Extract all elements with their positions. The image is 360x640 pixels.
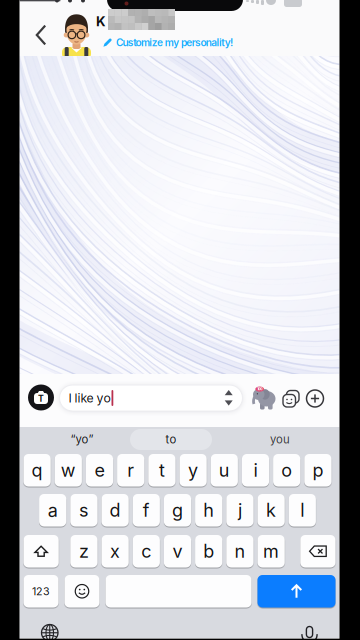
button[interactable]: More <box>306 390 323 407</box>
button[interactable]: Sticker suggestion <box>252 386 276 410</box>
button[interactable]: n <box>226 535 253 567</box>
staticText: w <box>61 459 76 481</box>
button[interactable]: w <box>55 454 82 486</box>
staticText: p <box>312 459 323 481</box>
staticText: h <box>203 499 214 521</box>
staticText: T <box>38 393 44 404</box>
staticText: i <box>253 459 257 481</box>
button[interactable]: Dictate <box>301 626 318 640</box>
button[interactable]: t <box>148 454 175 486</box>
staticText: b <box>203 540 214 562</box>
staticText: o <box>281 459 292 481</box>
button[interactable]: Send <box>257 575 335 607</box>
button[interactable]: Delete <box>300 535 335 567</box>
staticText: k <box>266 499 276 521</box>
staticText: you <box>270 433 290 446</box>
staticText: e <box>94 459 104 481</box>
button[interactable]: q <box>23 454 51 486</box>
button[interactable]: to <box>130 429 212 450</box>
staticText: u <box>219 459 230 481</box>
staticText: K <box>96 13 106 29</box>
button[interactable]: Stickers <box>283 390 299 407</box>
button[interactable]: r <box>117 454 144 486</box>
button[interactable]: p <box>304 454 331 486</box>
button[interactable]: g <box>164 494 191 526</box>
button[interactable]: Back <box>28 17 54 53</box>
staticText: c <box>141 540 151 562</box>
button[interactable]: k <box>257 494 285 526</box>
staticText: “yo” <box>70 433 93 446</box>
button[interactable]: you <box>245 429 315 450</box>
button[interactable]: y <box>179 454 207 486</box>
button[interactable]: j <box>226 494 253 526</box>
staticText: v <box>172 540 182 562</box>
button[interactable]: b <box>195 535 222 567</box>
button[interactable]: d <box>101 494 129 526</box>
button[interactable]: Next keyboard <box>41 624 58 640</box>
button[interactable]: Space <box>105 575 251 607</box>
button[interactable]: Camera <box>28 384 54 410</box>
button[interactable]: Message <box>59 385 242 411</box>
button[interactable]: i <box>242 454 269 486</box>
staticText: y <box>188 459 198 481</box>
button[interactable]: s <box>70 494 97 526</box>
button[interactable]: f <box>133 494 160 526</box>
button[interactable]: Emoji <box>64 575 99 607</box>
button[interactable]: o <box>273 454 300 486</box>
button[interactable]: h <box>195 494 222 526</box>
staticText: l <box>300 499 304 521</box>
button[interactable]: c <box>133 535 160 567</box>
button[interactable]: Customize my personality! <box>103 36 233 49</box>
staticText: a <box>48 499 58 521</box>
staticText: s <box>79 499 89 521</box>
staticText: I like yo <box>68 391 110 405</box>
staticText: x <box>110 540 120 562</box>
button[interactable]: x <box>101 535 129 567</box>
staticText: z <box>79 540 89 562</box>
staticText: q <box>32 459 43 481</box>
staticText: 100 <box>257 387 262 391</box>
button[interactable]: e <box>86 454 113 486</box>
button[interactable]: 123 <box>23 575 58 607</box>
button[interactable]: Shift <box>23 535 59 567</box>
staticText: 123 <box>32 585 50 598</box>
staticText: Customize my personality! <box>116 36 233 49</box>
button[interactable]: l <box>289 494 316 526</box>
staticText: d <box>110 499 121 521</box>
staticText: f <box>143 499 150 521</box>
staticText: g <box>172 499 183 521</box>
button[interactable]: v <box>164 535 191 567</box>
staticText: r <box>127 459 134 481</box>
staticText: n <box>234 540 245 562</box>
staticText: j <box>238 499 242 521</box>
staticText: t <box>159 459 165 481</box>
staticText: m <box>263 540 279 562</box>
button[interactable]: a <box>39 494 66 526</box>
button[interactable]: m <box>257 535 285 567</box>
button[interactable]: “yo” <box>47 429 117 450</box>
staticText: to <box>165 433 176 446</box>
button[interactable]: z <box>70 535 97 567</box>
button[interactable]: u <box>211 454 238 486</box>
